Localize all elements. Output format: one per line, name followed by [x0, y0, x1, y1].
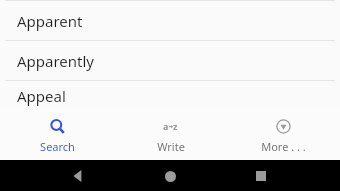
button[interactable]: Appeal [0, 81, 340, 110]
button[interactable]: Home [161, 167, 179, 185]
staticText: a [163, 120, 169, 132]
staticText: Search [40, 139, 75, 154]
staticText: More . . . [261, 139, 306, 154]
button[interactable]: Recent apps [252, 167, 270, 185]
button[interactable]: Search [0, 110, 114, 160]
staticText: z [173, 120, 178, 132]
button[interactable]: Apparently [0, 41, 340, 80]
button[interactable]: More options [227, 110, 340, 160]
button[interactable]: Back [70, 168, 86, 184]
staticText: Apparent [17, 11, 83, 31]
staticText: Write [157, 139, 185, 154]
button[interactable]: Apparent [0, 1, 340, 40]
staticText: Appeal [17, 86, 66, 106]
button[interactable]: Write [114, 110, 227, 160]
staticText: Apparently [17, 51, 95, 71]
